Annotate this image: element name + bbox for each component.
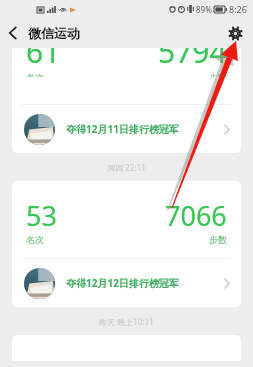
staticText: 周四 22:11 [107,162,146,173]
staticText: 名次 [26,234,44,245]
button[interactable]: 夺得12月11日排行榜冠军 [12,105,241,153]
staticText: 53 [26,197,57,234]
staticText: 名次 [26,72,44,77]
staticText: 8:26 [229,3,247,15]
staticText: 89% [196,4,212,15]
button[interactable]: 返回 [0,19,26,47]
staticText: 步数 [209,72,227,77]
button[interactable]: 61 [12,48,241,153]
button[interactable]: 53 [12,181,241,307]
staticText: 微信运动 [28,25,80,41]
button[interactable]: 设置 [222,20,248,46]
staticText: 步数 [209,234,227,245]
staticText: 5794 [158,48,227,72]
staticText: 昨天 晚上10:11 [99,316,154,327]
staticText: 7066 [165,197,227,234]
staticText: 61 [26,48,61,72]
button[interactable]: 夺得12月12日排行榜冠军 [12,259,241,307]
staticText: 夺得12月12日排行榜冠军 [66,276,179,290]
staticText: 夺得12月11日排行榜冠军 [66,122,179,136]
